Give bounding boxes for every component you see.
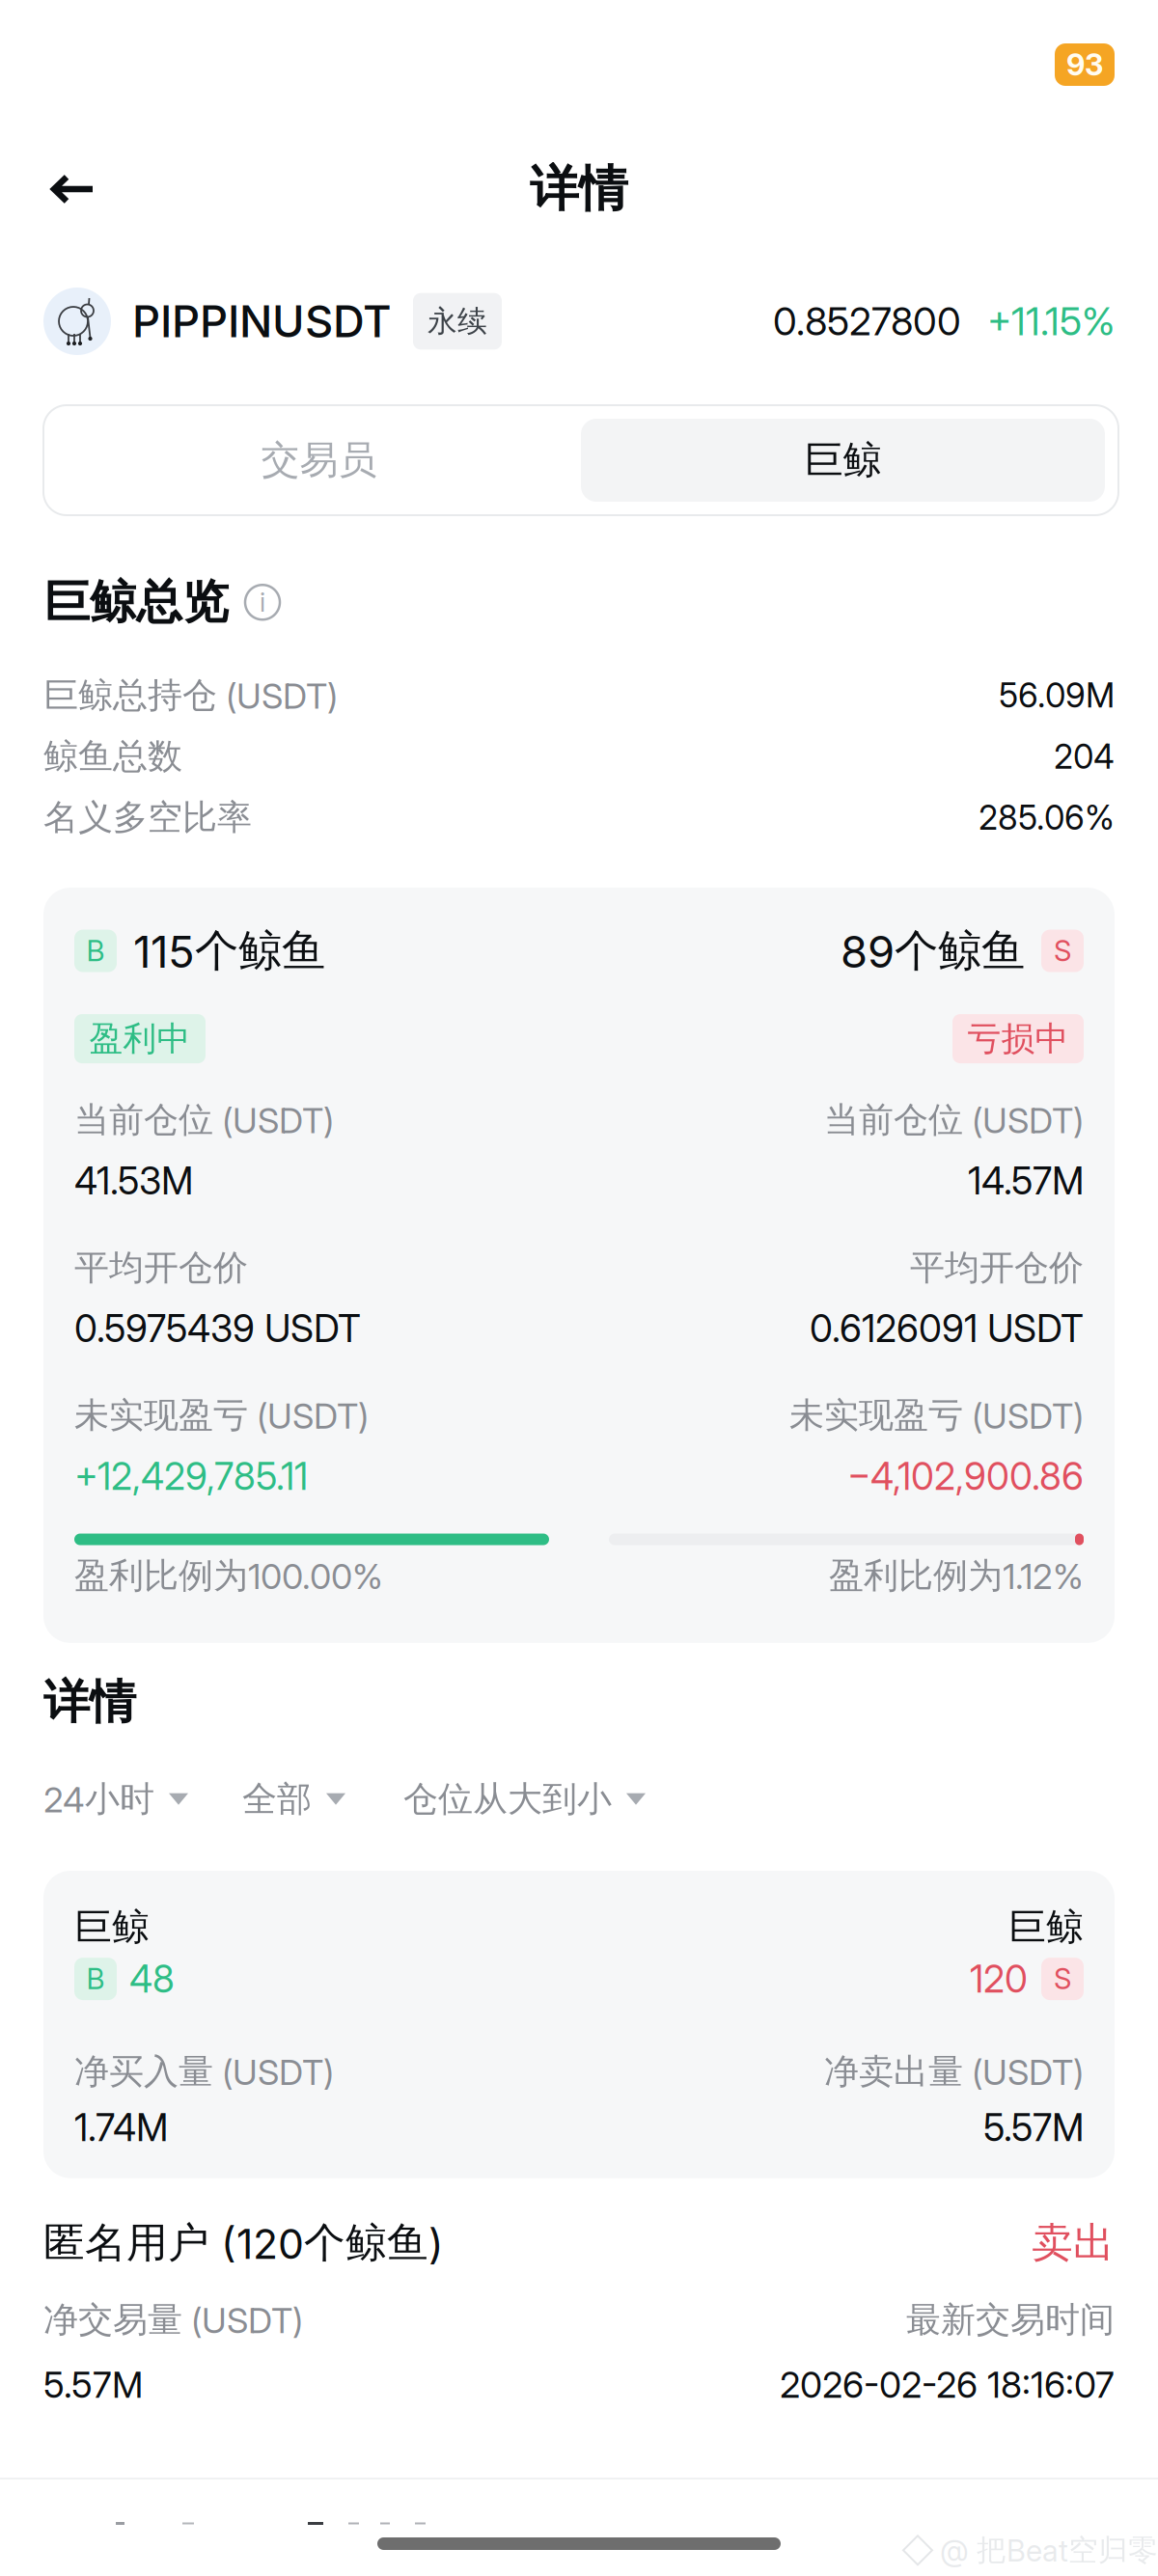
button[interactable]: 巨鲸 — [581, 419, 1105, 502]
staticText: 鲸鱼总数 — [43, 735, 182, 778]
staticText: 56.09M — [999, 675, 1115, 715]
staticText: 204 — [1054, 736, 1115, 777]
staticText: 5.57M — [983, 2105, 1084, 2150]
staticText: 5.57M — [43, 2363, 143, 2406]
staticText: B — [86, 934, 105, 968]
staticText: 0.8527800 — [773, 298, 961, 345]
button[interactable]: 24小时 — [43, 1777, 188, 1821]
staticText: 详情 — [43, 1673, 136, 1731]
staticText: 名义多空比率 — [43, 796, 252, 839]
staticText: 0.5975439 USDT — [74, 1306, 361, 1351]
staticText: 盈利比例为100.00% — [74, 1554, 383, 1598]
staticText: 巨鲸 — [1008, 1904, 1084, 1951]
staticText: 115个鲸鱼 — [133, 923, 325, 978]
staticText: 24小时 — [43, 1777, 154, 1821]
staticText: 巨鲸总览 — [43, 573, 229, 631]
staticText: 41.53M — [74, 1158, 193, 1203]
staticText: 交易员 — [261, 436, 377, 485]
button[interactable]: Back — [43, 161, 148, 217]
button[interactable]: 仓位从大到小 — [403, 1777, 646, 1821]
staticText: 未实现盈亏 (USDT) — [789, 1394, 1084, 1437]
staticText: 89个鲸鱼 — [841, 923, 1025, 978]
staticText: 14.57M — [968, 1158, 1084, 1203]
staticText: 2026-02-26 18:16:07 — [780, 2363, 1115, 2406]
staticText: 120 — [970, 1956, 1028, 2001]
staticText: 净卖出量 (USDT) — [824, 2050, 1084, 2094]
staticText: 当前仓位 (USDT) — [824, 1098, 1084, 1142]
staticText: 净买入量 (USDT) — [74, 2050, 334, 2094]
staticText: B — [86, 1962, 105, 1996]
button[interactable]: 全部 — [242, 1777, 345, 1821]
staticText: 当前仓位 (USDT) — [74, 1098, 334, 1142]
staticText: S — [1054, 1962, 1071, 1996]
staticText: 285.06% — [979, 797, 1115, 838]
staticText: 最新交易时间 — [906, 2298, 1115, 2342]
staticText: 详情 — [530, 158, 628, 220]
staticText: 1.74M — [74, 2105, 168, 2150]
staticText: S — [1054, 934, 1071, 968]
staticText: 匿名用户 (120个鲸鱼) — [43, 2217, 444, 2269]
staticText: 卖出 — [1032, 2217, 1115, 2269]
staticText: 盈利中 — [89, 1018, 191, 1060]
staticText: 亏损中 — [967, 1018, 1069, 1060]
staticText: +12,429,785.11 — [74, 1454, 308, 1499]
staticText: −4,102,900.86 — [847, 1454, 1084, 1499]
staticText: 平均开仓价 — [74, 1246, 248, 1290]
staticText: 仓位从大到小 — [403, 1777, 612, 1821]
staticText: 巨鲸 — [804, 436, 882, 485]
staticText: 巨鲸总持仓 (USDT) — [43, 673, 338, 717]
staticText: 未实现盈亏 (USDT) — [74, 1394, 369, 1437]
staticText: PIPPINUSDT — [132, 295, 392, 348]
staticText: 平均开仓价 — [910, 1246, 1084, 1290]
staticText: 全部 — [242, 1777, 312, 1821]
staticText: 盈利比例为1.12% — [829, 1554, 1084, 1598]
staticText: @ 把Beat空归零 — [940, 2532, 1158, 2569]
staticText: 0.6126091 USDT — [810, 1306, 1084, 1351]
staticText: 永续 — [427, 303, 487, 340]
staticText: 巨鲸 — [74, 1904, 150, 1951]
staticText: +11.15% — [987, 298, 1115, 345]
staticText: 93 — [1066, 47, 1103, 82]
staticText: i — [260, 587, 265, 618]
staticText: 净交易量 (USDT) — [43, 2298, 303, 2342]
staticText: 48 — [129, 1956, 175, 2001]
button[interactable]: 交易员 — [57, 419, 581, 502]
